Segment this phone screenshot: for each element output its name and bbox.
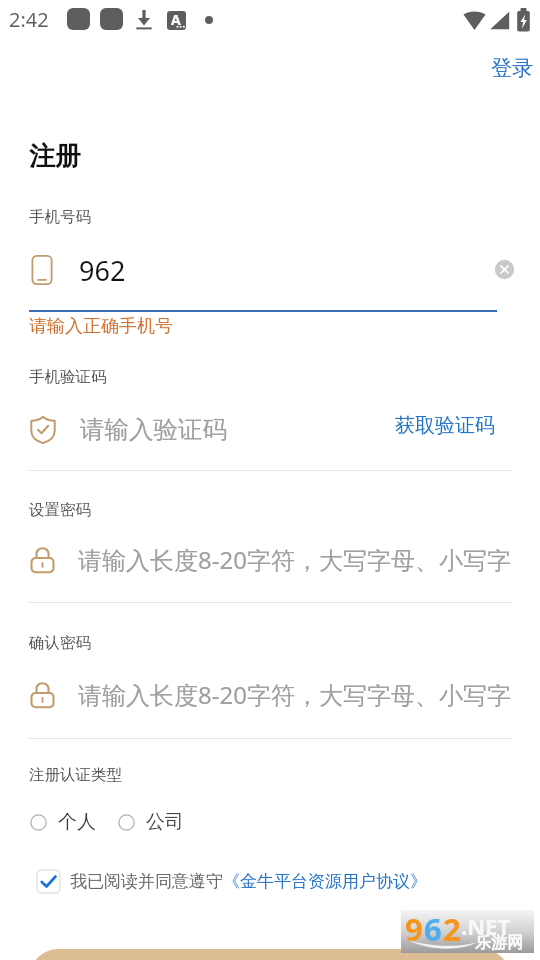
button[interactable]: 获取验证码: [387, 409, 503, 441]
staticText: 请输入长度8-20字符，大写字母、小写字母: [78, 543, 513, 575]
staticText: .NET: [461, 911, 511, 941]
staticText: 确认密码: [29, 633, 91, 653]
staticText: 个人: [58, 810, 96, 834]
staticText: 公司: [146, 810, 184, 834]
staticText: 获取验证码: [395, 413, 495, 438]
button[interactable]: Clear: [494, 259, 515, 280]
staticText: 《金牛平台资源用户协议》: [223, 871, 427, 892]
staticText: 请输入正确手机号: [29, 315, 173, 338]
button[interactable]: Login: [481, 49, 540, 87]
button[interactable]: 我已阅读并同意遵守: [36, 866, 427, 896]
staticText: 乐游网: [475, 933, 523, 953]
button[interactable]: 公司: [116, 810, 186, 834]
staticText: 9: [405, 908, 423, 950]
staticText: 我已阅读并同意遵守: [70, 871, 223, 892]
button[interactable]: Register: [30, 949, 510, 960]
button[interactable]: 个人: [28, 810, 98, 834]
staticText: 962: [79, 252, 126, 288]
staticText: 注册认证类型: [29, 765, 122, 785]
staticText: 2:42: [9, 6, 49, 33]
staticText: 6: [424, 908, 442, 950]
staticText: 登录: [491, 55, 533, 81]
staticText: 请输入验证码: [80, 414, 227, 445]
staticText: 手机验证码: [29, 367, 107, 387]
staticText: 请输入长度8-20字符，大写字母、小写字母: [78, 678, 513, 710]
staticText: 手机号码: [29, 207, 91, 227]
staticText: 2: [443, 908, 461, 950]
staticText: 设置密码: [29, 500, 91, 520]
staticText: A: [171, 11, 181, 29]
staticText: 注册: [29, 140, 81, 173]
